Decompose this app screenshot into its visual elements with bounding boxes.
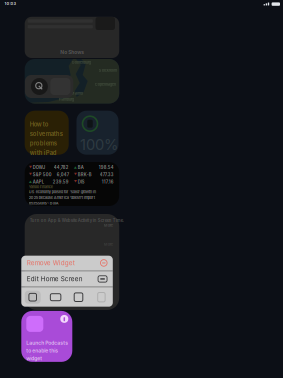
staticText: 117.16 [102,179,114,184]
staticText: Remove Widget [27,259,75,267]
staticText: ▼ [74,180,77,184]
staticText: 198.54 [99,165,114,170]
staticText: Malmö [71,91,83,96]
staticText: Hamburg [59,97,74,102]
staticText: 477.33 [100,172,114,177]
staticText: solve maths [30,130,63,137]
button[interactable]: Small widget [21,287,44,307]
staticText: More [104,223,113,228]
staticText: ▼ [74,173,77,177]
button[interactable]: Edit Home Screen [21,271,113,287]
staticText: to enable this [26,348,58,354]
staticText: Copenhagen [95,82,116,87]
staticText: 100% [80,136,118,153]
staticText: Stockholm [99,68,117,73]
staticText: widget [26,355,42,361]
staticText: ▲ [74,166,77,169]
staticText: BRK-B [78,172,92,177]
staticText: AAPL [33,179,44,184]
button[interactable]: Launch Podcasts [21,311,72,362]
staticText: Edit Home Screen [27,275,83,283]
staticText: 44,782 [54,165,69,170]
button[interactable]: Remove Widget [21,255,113,271]
staticText: S&P 500 [33,172,52,177]
staticText: with iPad [30,149,57,156]
button[interactable]: No Shows [25,17,119,58]
button[interactable]: Turn on App & Website Activity in Screen… [25,214,119,310]
button[interactable]: Large widget [67,287,90,307]
staticText: ▼ [29,173,32,177]
button[interactable]: Gothenburg [25,59,119,103]
staticText: More [104,242,113,247]
staticText: 239.59 [53,179,69,184]
button[interactable]: 100% [76,111,118,155]
button[interactable]: How to [25,111,69,155]
staticText: Gothenburg [72,60,91,65]
staticText: Turn on App & Website Activity in Screen… [30,218,124,223]
button[interactable]: Medium widget [44,287,67,307]
staticText: No Shows [60,49,84,55]
staticText: 10:03 [5,1,17,6]
button[interactable]: ▼ [25,162,119,206]
staticText: Yahoo Finance [29,184,53,189]
staticText: 2025 because America 'doesn't import [29,195,95,200]
staticText: DOWJ [33,165,45,170]
staticText: US economy poised for 'solid' growth in [29,189,96,194]
staticText: Launch Podcasts [26,340,68,346]
staticText: 6,047 [57,172,69,177]
staticText: recessions': BofA [29,201,59,206]
staticText: BA [78,165,84,170]
staticText: How to [30,121,49,128]
button[interactable]: Extra large widget [90,287,113,307]
staticText: ▼ [29,166,32,169]
staticText: problems [30,140,57,147]
staticText: ▲ [29,180,32,184]
staticText: DIS [78,179,85,184]
